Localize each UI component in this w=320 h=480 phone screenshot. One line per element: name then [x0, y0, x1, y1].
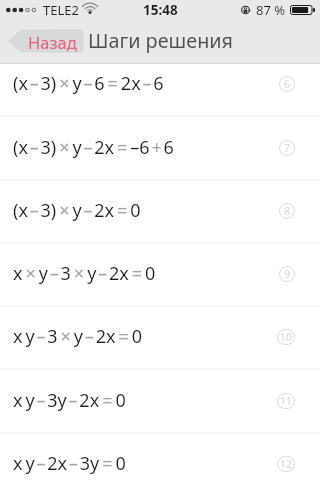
- button[interactable]: x y – 3y – 2x = 0: [0, 369, 320, 432]
- staticText: x y – 2x – 3y = 0: [13, 451, 126, 476]
- staticText: x y – 3y – 2x = 0: [13, 388, 126, 413]
- staticText: (x – 3) × y – 2x = –6 + 6: [13, 135, 174, 160]
- staticText: x y – 3 × y – 2x = 0: [13, 324, 143, 349]
- button[interactable]: (x – 3) × y – 2x = 0: [0, 179, 320, 242]
- staticText: 87 %: [256, 1, 286, 19]
- staticText: (x – 3) × y – 2x = 0: [13, 198, 141, 223]
- staticText: x × y – 3 × y – 2x = 0: [13, 261, 156, 286]
- button[interactable]: x y – 2x – 3y = 0: [0, 432, 320, 480]
- button[interactable]: (x – 3) × y – 6 = 2x – 6: [0, 52, 320, 115]
- button[interactable]: x × y – 3 × y – 2x = 0: [0, 242, 320, 305]
- staticText: 11: [280, 394, 293, 408]
- staticText: TELE2: [43, 1, 79, 19]
- staticText: 6: [284, 77, 291, 91]
- staticText: 7: [284, 141, 291, 155]
- button[interactable]: Back: [0, 20, 90, 64]
- staticText: 15:48: [143, 1, 178, 19]
- staticText: 8: [284, 204, 291, 218]
- staticText: 12: [280, 457, 293, 471]
- staticText: (x – 3) × y – 6 = 2x – 6: [13, 71, 164, 96]
- staticText: 10: [280, 330, 293, 344]
- staticText: Назад: [28, 31, 77, 53]
- staticText: Шаги решения: [88, 27, 234, 54]
- staticText: 9: [284, 267, 291, 281]
- button[interactable]: x y – 3 × y – 2x = 0: [0, 305, 320, 368]
- button[interactable]: (x – 3) × y – 2x = –6 + 6: [0, 116, 320, 179]
